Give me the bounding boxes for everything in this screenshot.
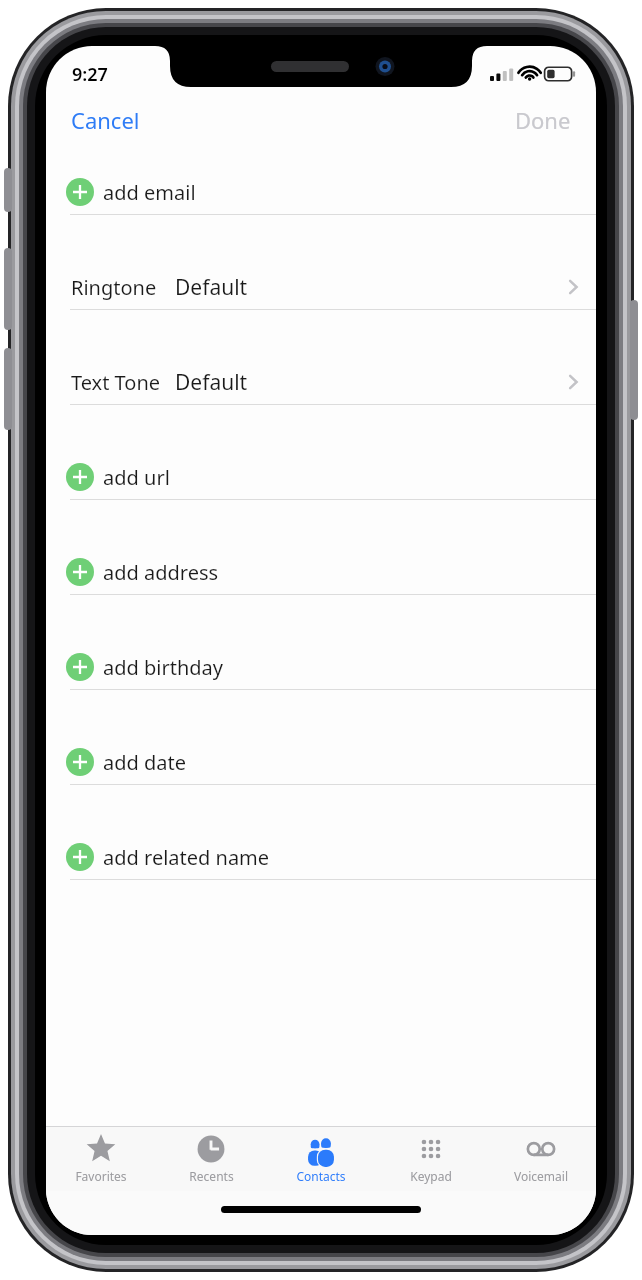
staticText: Voicemail [514, 1168, 568, 1184]
staticText: Favorites [75, 1168, 127, 1184]
button[interactable]: add url [46, 455, 596, 500]
staticText: add related name [103, 844, 270, 871]
staticText: add date [103, 749, 187, 776]
button[interactable]: Voicemail [486, 1127, 596, 1191]
staticText: Done [515, 105, 571, 135]
button[interactable]: add birthday [46, 645, 596, 690]
staticText: Default [175, 368, 248, 397]
staticText: add birthday [103, 654, 224, 681]
button[interactable]: Contacts [266, 1127, 376, 1191]
button[interactable]: add address [46, 550, 596, 595]
staticText: Keypad [410, 1168, 452, 1184]
staticText: Recents [189, 1168, 234, 1184]
button[interactable]: add date [46, 740, 596, 785]
button[interactable]: add email [46, 170, 596, 215]
staticText: Default [175, 273, 248, 302]
button[interactable]: add related name [46, 835, 596, 880]
staticText: Ringtone [71, 274, 157, 301]
button[interactable]: Keypad [376, 1127, 486, 1191]
staticText: Cancel [71, 105, 140, 135]
staticText: add address [103, 559, 219, 586]
staticText: 9:27 [72, 62, 108, 87]
staticText: add email [103, 179, 196, 206]
button[interactable]: Text Tone [46, 360, 596, 405]
staticText: Contacts [296, 1168, 346, 1184]
staticText: add url [103, 464, 170, 491]
button[interactable]: Favorites [46, 1127, 156, 1191]
staticText: Text Tone [71, 369, 161, 396]
button[interactable]: Cancel [56, 96, 155, 144]
button[interactable]: Ringtone [46, 265, 596, 310]
button[interactable]: Done [500, 96, 586, 144]
button[interactable]: Recents [156, 1127, 266, 1191]
